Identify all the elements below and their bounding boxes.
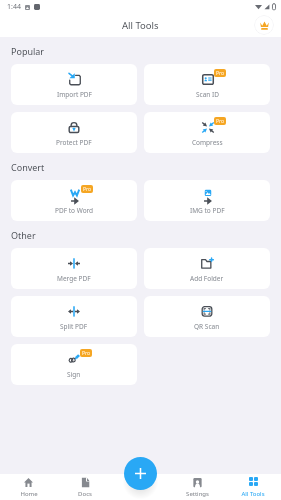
- staticText: All Tools: [122, 19, 159, 32]
- button[interactable]: Premium: [254, 15, 274, 35]
- staticText: QR Scan: [194, 322, 220, 331]
- staticText: Docs: [78, 490, 92, 498]
- button[interactable]: QR Scan: [144, 296, 270, 337]
- button[interactable]: Settings: [169, 477, 225, 498]
- button[interactable]: Pro: [144, 64, 270, 105]
- staticText: Compress: [192, 138, 223, 147]
- button[interactable]: Add: [124, 457, 157, 490]
- staticText: IMG to PDF: [190, 206, 225, 215]
- button[interactable]: Home: [0, 477, 57, 498]
- staticText: Pro: [216, 70, 225, 77]
- staticText: Pro: [83, 186, 92, 193]
- staticText: Add Folder: [190, 274, 224, 283]
- staticText: Popular: [11, 45, 45, 57]
- staticText: Pro: [216, 118, 225, 125]
- button[interactable]: IMG to PDF: [144, 180, 270, 221]
- button[interactable]: Pro: [11, 344, 137, 385]
- button[interactable]: Pro: [144, 112, 270, 153]
- staticText: Home: [20, 490, 38, 498]
- button[interactable]: Merge PDF: [11, 248, 137, 289]
- button[interactable]: Import PDF: [11, 64, 137, 105]
- staticText: Merge PDF: [57, 274, 91, 283]
- staticText: 1:44: [7, 2, 21, 12]
- button[interactable]: Split PDF: [11, 296, 137, 337]
- staticText: PDF to Word: [55, 206, 94, 215]
- button[interactable]: Docs: [57, 477, 113, 498]
- staticText: Split PDF: [60, 322, 88, 331]
- button[interactable]: All Tools: [225, 477, 281, 498]
- button[interactable]: Add Folder: [144, 248, 270, 289]
- staticText: Protect PDF: [56, 138, 92, 147]
- staticText: Settings: [186, 490, 209, 498]
- staticText: Scan ID: [196, 90, 219, 99]
- button[interactable]: Pro: [11, 180, 137, 221]
- staticText: Other: [11, 229, 36, 241]
- staticText: Convert: [11, 161, 45, 173]
- staticText: Sign: [67, 370, 81, 379]
- staticText: Pro: [82, 350, 91, 357]
- button[interactable]: Protect PDF: [11, 112, 137, 153]
- staticText: All Tools: [241, 490, 265, 498]
- staticText: Import PDF: [57, 90, 92, 99]
